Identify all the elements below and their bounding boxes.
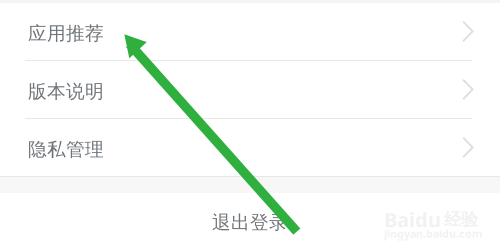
button[interactable]: 应用推荐 — [0, 3, 500, 60]
staticText: 经验 — [444, 209, 478, 230]
staticText: jingyan.baidu.com — [384, 226, 482, 241]
button[interactable]: 版本说明 — [0, 61, 500, 118]
staticText: 退出登录 — [212, 211, 288, 234]
button[interactable]: 隐私管理 — [0, 119, 500, 176]
staticText: 版本说明 — [28, 80, 104, 103]
staticText: 应用推荐 — [28, 22, 104, 45]
staticText: Baidu — [384, 206, 441, 233]
staticText: 隐私管理 — [28, 138, 104, 161]
button[interactable]: 退出登录 — [0, 193, 500, 252]
